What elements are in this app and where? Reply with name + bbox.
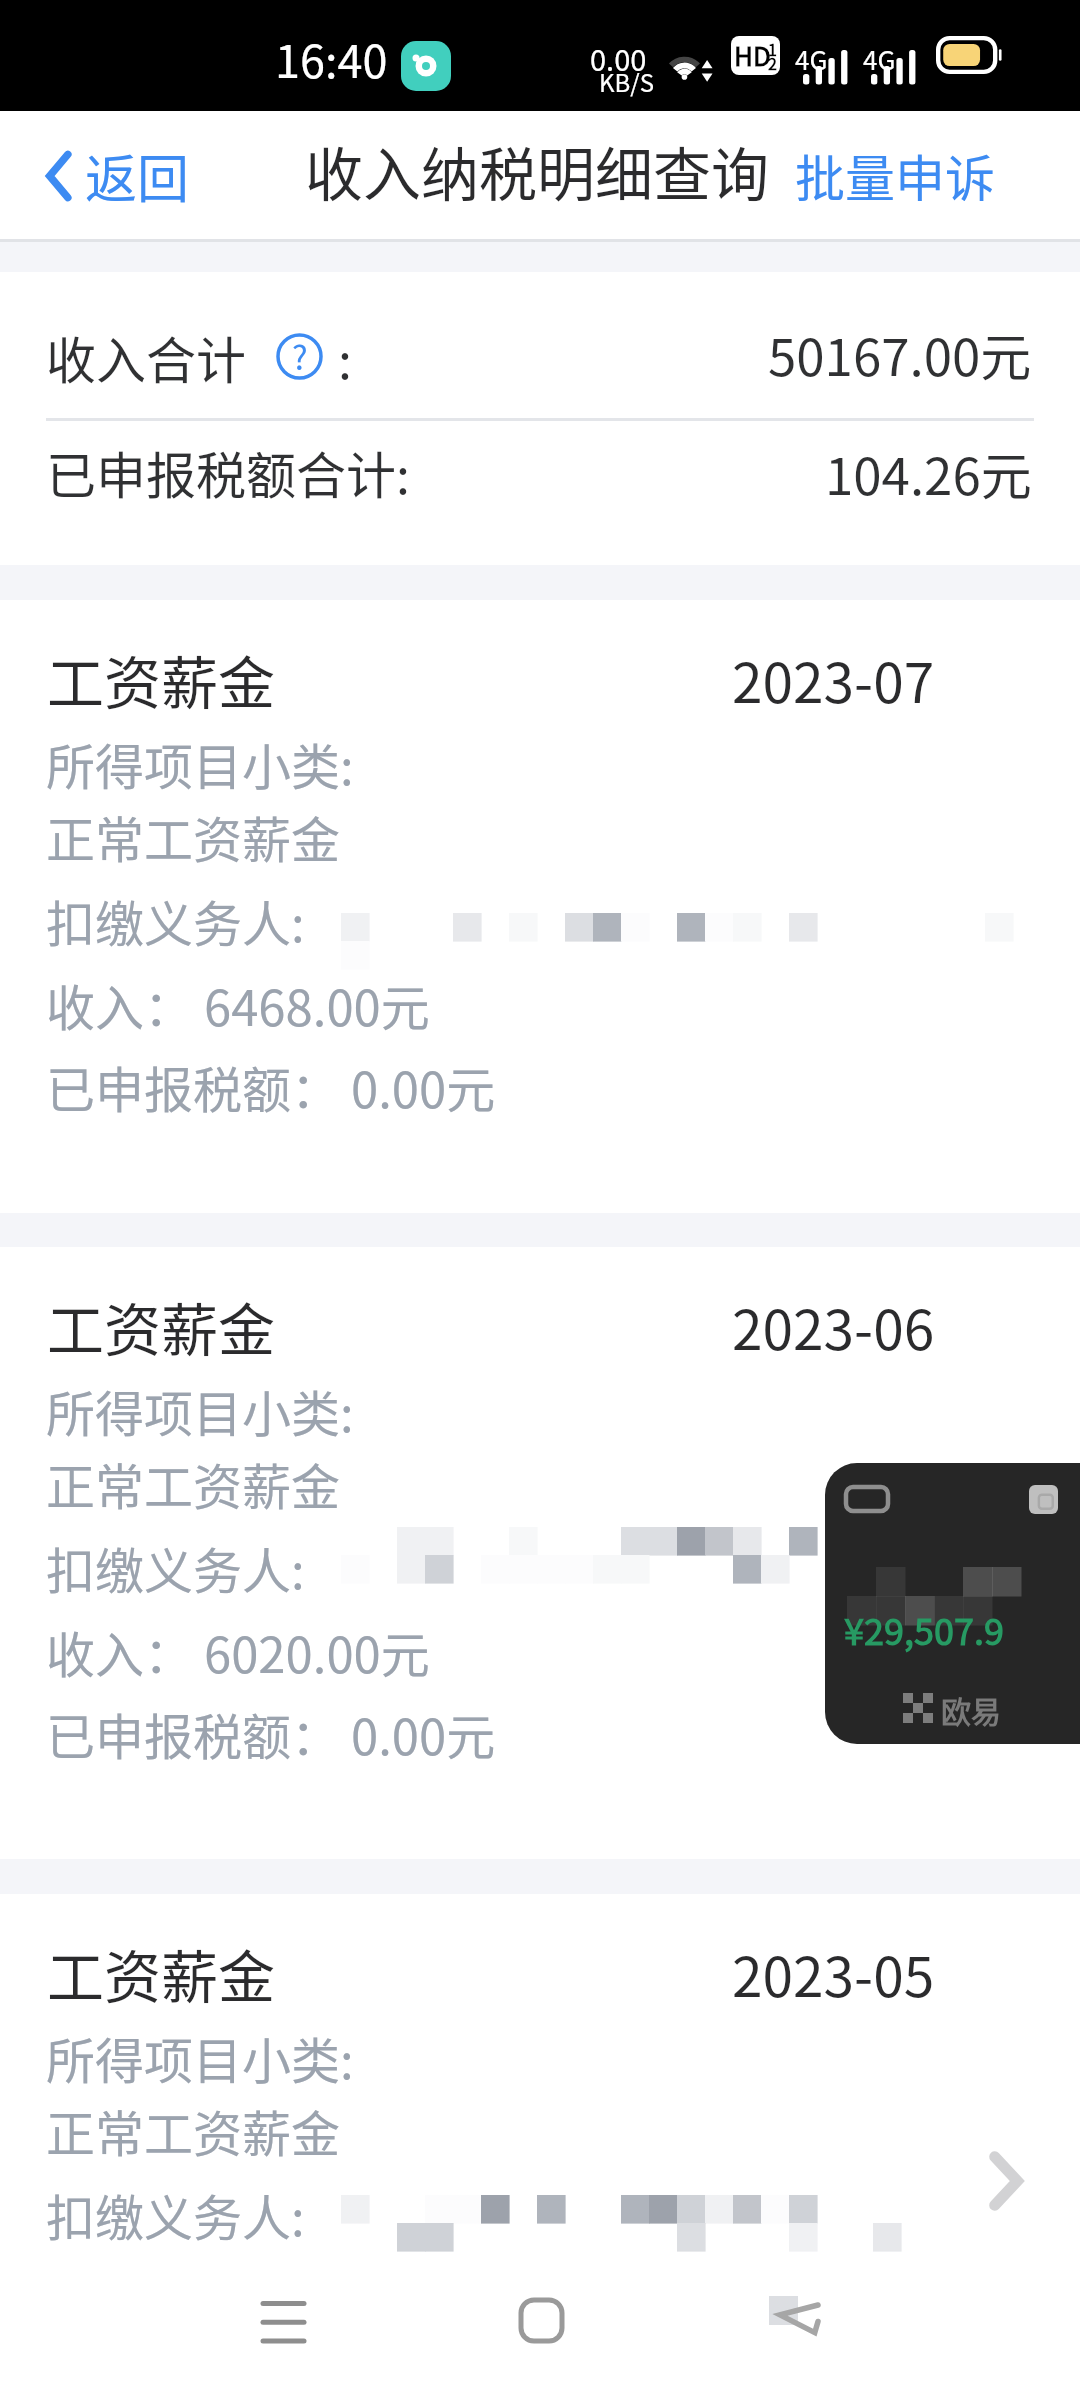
staticText: HD [734, 36, 771, 74]
staticText: 16:40 [275, 26, 388, 91]
staticText: 正常工资薪金 [46, 1448, 341, 1519]
button[interactable]: 返回 [758, 2285, 838, 2355]
staticText: ? [292, 332, 308, 379]
staticText: 4G [863, 40, 896, 78]
staticText: 已申报税额合计: [46, 436, 410, 508]
staticText: 2 [768, 51, 777, 74]
staticText: ¥29,507.9 [844, 1603, 1004, 1655]
staticText: 所得项目小类: [46, 728, 354, 799]
staticText: 工资薪金 [47, 638, 275, 721]
staticText: 正常工资薪金 [46, 801, 341, 872]
staticText: 收入： 6468.00元 [46, 969, 430, 1040]
button[interactable]: 工资薪金 [0, 600, 1080, 1213]
staticText: 工资薪金 [47, 1932, 275, 2015]
staticText: 正常工资薪金 [46, 2095, 341, 2166]
staticText: 已申报税额： 0.00元 [46, 1698, 496, 1769]
button[interactable]: 工资薪金 [0, 1894, 1080, 2400]
button[interactable]: 欧易悬浮窗 [825, 1463, 1080, 1744]
staticText: 4G [795, 40, 828, 78]
staticText: 工资薪金 [47, 1285, 275, 1368]
button[interactable]: 工资薪金 [0, 1247, 1080, 1859]
staticText: 所得项目小类: [46, 1375, 354, 1446]
staticText: 扣缴义务人: [46, 885, 305, 956]
staticText: 收入合计 [46, 321, 246, 393]
staticText: 104.26元 [825, 436, 1032, 510]
staticText: 2023-05 [732, 1933, 935, 2013]
staticText: 收入纳税明细查询 [305, 129, 770, 213]
staticText: 收入： 6020.00元 [46, 1616, 430, 1687]
staticText: 50167.00元 [768, 317, 1032, 391]
button[interactable]: 批量申诉 [781, 111, 1080, 239]
staticText: 1 [768, 37, 777, 60]
button[interactable]: 主页 [500, 2285, 582, 2355]
staticText: 所得项目小类: [46, 2022, 354, 2093]
staticText: 扣缴义务人: [46, 2179, 305, 2250]
staticText: KB/S [599, 64, 654, 99]
staticText: 0.00 [590, 37, 647, 79]
staticText: 返回 [85, 138, 190, 213]
staticText: 扣缴义务人: [46, 1532, 305, 1603]
staticText: 2023-06 [732, 1286, 935, 1366]
button[interactable]: 说明 [276, 333, 323, 380]
staticText: : [338, 321, 352, 393]
button[interactable]: 最近任务 [242, 2285, 324, 2355]
button[interactable]: 返回 [0, 118, 210, 233]
staticText: 已申报税额： 0.00元 [46, 1051, 496, 1122]
staticText: 欧易 [941, 1688, 1001, 1731]
staticText: 2023-07 [732, 639, 935, 719]
